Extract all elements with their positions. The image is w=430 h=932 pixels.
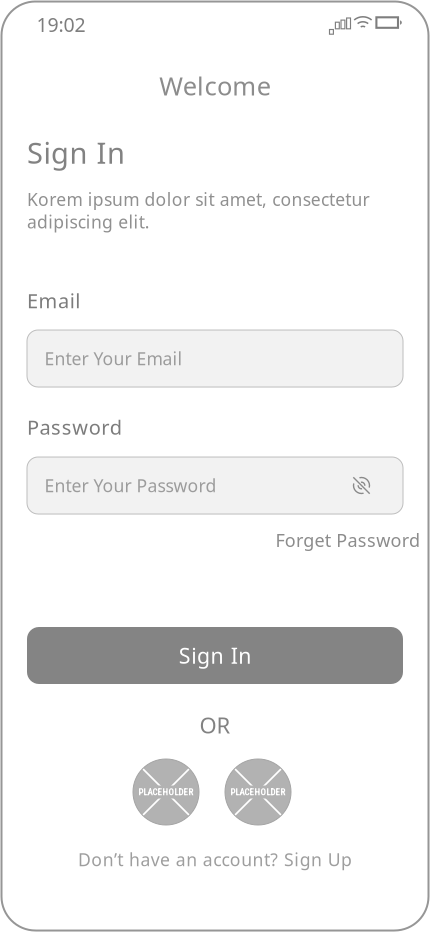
staticText: Welcome (159, 69, 271, 102)
staticText: Enter Your Password (44, 474, 216, 497)
button[interactable]: Enter Your Email (27, 330, 403, 387)
staticText: 19:02 (36, 12, 85, 37)
staticText: Sign In (27, 134, 125, 171)
button[interactable]: Sign In (27, 627, 403, 684)
staticText: OR (199, 711, 230, 739)
staticText: Korem ipsum dolor sit amet, consectetur … (27, 188, 370, 233)
button[interactable]: Forget Password (275, 528, 420, 552)
staticText: Enter Your Email (44, 347, 182, 370)
button[interactable]: Enter Your Password (27, 457, 403, 514)
staticText: PLACEHOLDER (138, 787, 193, 797)
button[interactable]: PLACEHOLDER (133, 759, 199, 825)
staticText: Password (27, 414, 122, 440)
button[interactable]: Don’t have an account? Sign Up (78, 848, 352, 871)
button[interactable]: PLACEHOLDER (225, 759, 291, 825)
staticText: Email (27, 288, 80, 313)
staticText: Don’t have an account? Sign Up (78, 848, 352, 871)
staticText: Forget Password (275, 528, 420, 552)
staticText: PLACEHOLDER (230, 787, 285, 797)
staticText: Sign In (179, 642, 251, 669)
